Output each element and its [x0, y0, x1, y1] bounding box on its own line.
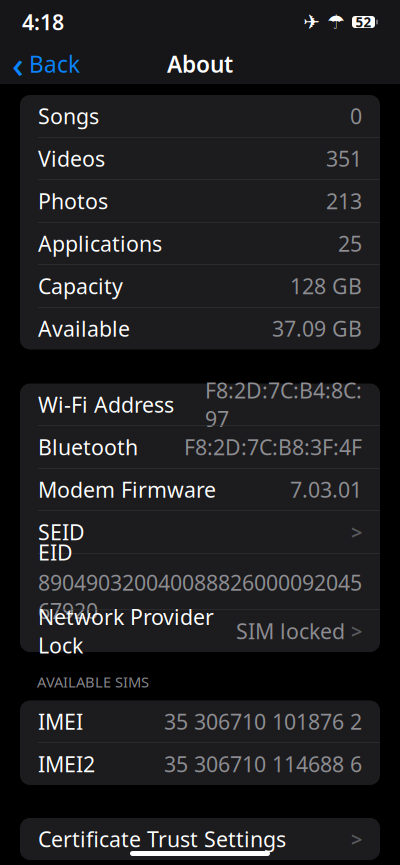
- staticText: Back: [29, 49, 80, 79]
- staticText: About: [167, 49, 233, 79]
- staticText: 213: [326, 187, 362, 215]
- button[interactable]: Network Provider Lock: [20, 610, 380, 652]
- staticText: 7.03.01: [290, 475, 362, 504]
- button[interactable]: Certificate Trust Settings: [20, 818, 380, 860]
- staticText: Wi-Fi Address: [38, 390, 174, 419]
- staticText: AVAILABLE SIMS: [37, 672, 149, 691]
- staticText: Network Provider Lock: [38, 603, 214, 659]
- staticText: SIM locked: [236, 617, 345, 645]
- staticText: 37.09 GB: [272, 314, 362, 343]
- staticText: F8:2D:7C:B4:8C:97: [205, 376, 362, 433]
- staticText: >: [351, 826, 362, 852]
- staticText: 35 306710 114688 6: [164, 750, 362, 778]
- staticText: IMEI: [38, 707, 83, 736]
- button[interactable]: SEID: [20, 511, 380, 553]
- staticText: Photos: [38, 187, 108, 215]
- staticText: ‹: [12, 40, 24, 88]
- staticText: 89049032004008882600009204567920: [38, 568, 362, 625]
- staticText: >: [351, 618, 362, 644]
- staticText: F8:2D:7C:B8:3F:4F: [184, 433, 362, 461]
- staticText: Available: [38, 314, 130, 343]
- staticText: 25: [338, 229, 362, 258]
- staticText: Modem Firmware: [38, 475, 216, 504]
- staticText: 52: [355, 13, 371, 31]
- staticText: Certificate Trust Settings: [38, 825, 286, 853]
- staticText: >: [351, 519, 362, 545]
- staticText: 35 306710 101876 2: [164, 707, 362, 736]
- staticText: IMEI2: [38, 750, 95, 778]
- staticText: 128 GB: [290, 272, 362, 300]
- staticText: Applications: [38, 229, 162, 258]
- staticText: Videos: [38, 144, 105, 173]
- staticText: EID: [38, 538, 73, 566]
- staticText: 0: [350, 102, 362, 130]
- staticText: ☂: [327, 11, 345, 33]
- staticText: 4:18: [22, 8, 64, 36]
- staticText: Bluetooth: [38, 433, 138, 461]
- staticText: SEID: [38, 518, 85, 546]
- button[interactable]: ‹: [0, 44, 92, 84]
- staticText: ✈: [303, 11, 320, 33]
- staticText: Songs: [38, 102, 99, 130]
- staticText: 351: [326, 144, 362, 173]
- staticText: Capacity: [38, 272, 123, 300]
